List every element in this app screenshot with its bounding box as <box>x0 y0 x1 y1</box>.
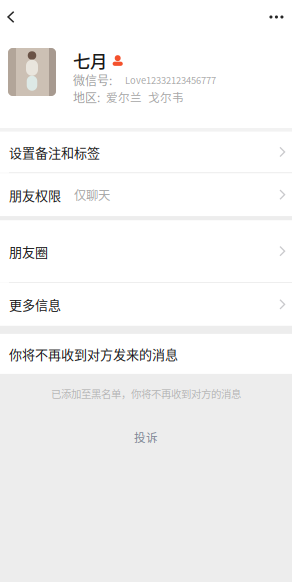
staticText: Love12332123456777 <box>125 73 216 87</box>
button[interactable]: 设置备注和标签 <box>0 131 292 172</box>
button[interactable]: 投诉 <box>104 429 188 445</box>
staticText: 仅聊天 <box>74 186 110 204</box>
staticText: 已添加至黑名单，你将不再收到对方的消息 <box>51 386 241 401</box>
staticText: 朋友圈 <box>9 242 48 261</box>
staticText: 爱尔兰 戈尔韦 <box>106 89 184 105</box>
button[interactable]: 更多信息 <box>0 283 292 326</box>
staticText: 更多信息 <box>9 295 61 314</box>
staticText: 设置备注和标签 <box>9 142 100 161</box>
staticText: 微信号: <box>73 71 112 89</box>
button[interactable]: Back <box>0 0 29 34</box>
staticText: 投诉 <box>134 429 158 445</box>
button[interactable]: 朋友权限 <box>0 173 292 216</box>
button[interactable]: 七月 <box>0 34 292 128</box>
staticText: 地区: <box>73 88 100 106</box>
button[interactable]: 朋友圈 <box>0 220 292 282</box>
staticText: 七月 <box>73 48 107 73</box>
staticText: 朋友权限 <box>9 185 61 204</box>
button[interactable]: More options <box>255 0 292 34</box>
staticText: 你将不再收到对方发来的消息 <box>9 344 178 363</box>
button[interactable]: 你将不再收到对方发来的消息 <box>0 334 292 374</box>
